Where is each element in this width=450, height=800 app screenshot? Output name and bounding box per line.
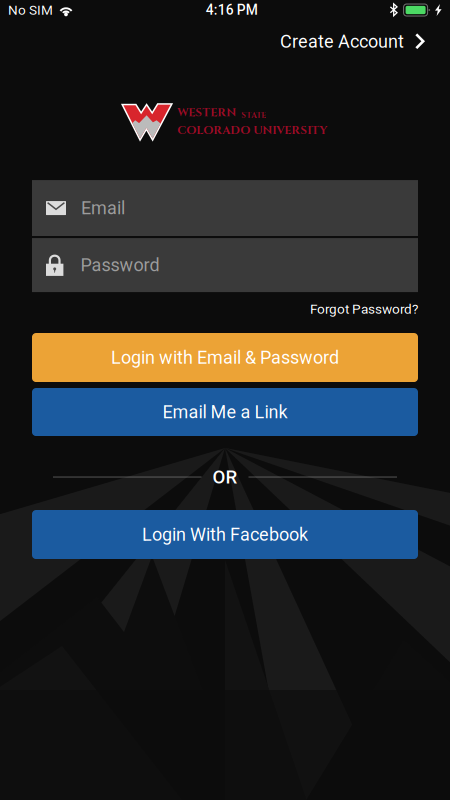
staticText: Email Me a Link bbox=[162, 401, 287, 423]
staticText: Login with Email & Password bbox=[111, 347, 339, 368]
staticText: Email bbox=[81, 197, 125, 219]
staticText: Create Account bbox=[280, 31, 404, 52]
button[interactable]: Create Account bbox=[255, 20, 450, 63]
staticText: STATE bbox=[241, 110, 266, 121]
button[interactable]: Login With Facebook bbox=[32, 510, 418, 559]
staticText: Login With Facebook bbox=[142, 524, 308, 545]
staticText: 4:16 PM bbox=[206, 2, 258, 18]
staticText: OR bbox=[212, 466, 237, 488]
button[interactable]: Email Me a Link bbox=[32, 388, 418, 436]
button[interactable]: Forgot Password? bbox=[310, 292, 418, 322]
staticText: Forgot Password? bbox=[310, 301, 418, 317]
button[interactable]: Login with Email & Password bbox=[32, 333, 418, 382]
staticText: No SIM bbox=[8, 2, 53, 18]
staticText: Password bbox=[80, 254, 159, 276]
staticText: WESTERN bbox=[177, 105, 236, 121]
staticText: COLORADO UNIVERSITY bbox=[177, 123, 327, 138]
